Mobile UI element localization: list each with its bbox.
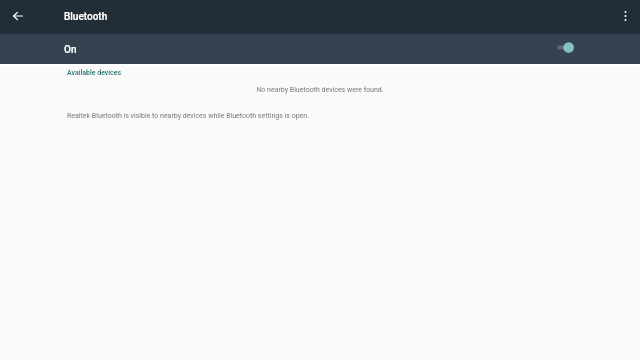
staticText: Bluetooth [64,11,108,23]
button[interactable]: On [0,34,640,64]
staticText: Available devices [67,69,122,77]
button[interactable]: Bluetooth toggle, on [557,41,574,54]
button[interactable]: Navigate up [6,4,30,28]
staticText: Realtek Bluetooth is visible to nearby d… [67,112,310,120]
staticText: No nearby Bluetooth devices were found. [0,86,640,94]
staticText: On [64,44,77,56]
button[interactable]: More options [613,4,637,28]
